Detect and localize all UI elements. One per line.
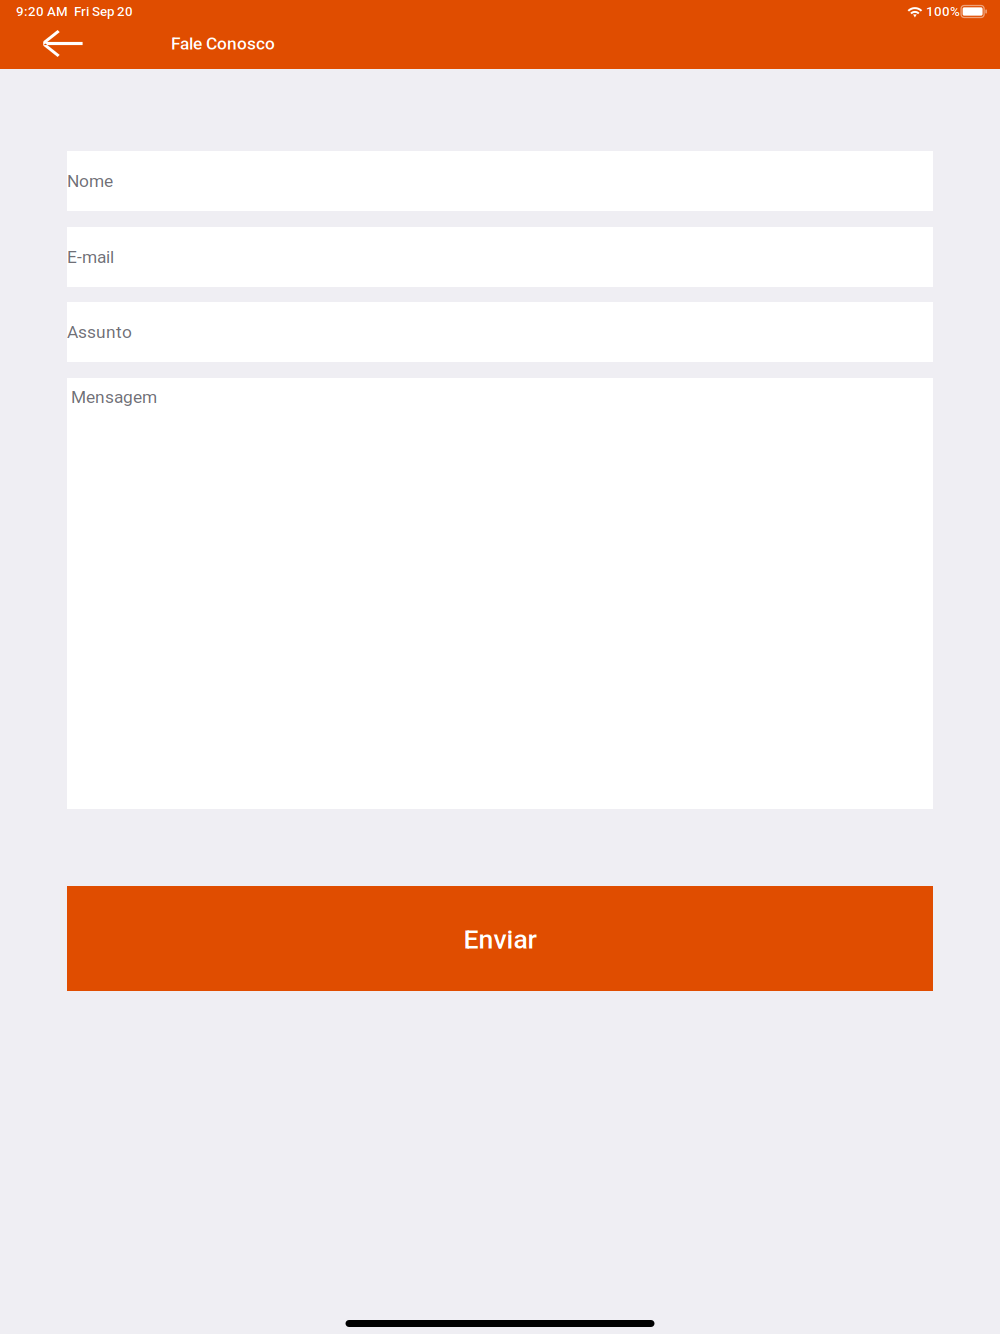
staticText: Enviar (463, 924, 536, 955)
button[interactable]: E-mail (67, 227, 933, 287)
button[interactable]: Back (21, 22, 121, 69)
staticText: Nome (67, 171, 113, 191)
staticText: 9:20 AM (16, 4, 68, 19)
button[interactable]: Mensagem (67, 378, 933, 809)
staticText: E-mail (67, 247, 114, 267)
button[interactable]: Nome (67, 151, 933, 211)
staticText: Mensagem (71, 387, 157, 407)
button[interactable]: Enviar (67, 886, 933, 991)
button[interactable]: Assunto (67, 302, 933, 362)
staticText: Assunto (67, 322, 132, 342)
staticText: Fale Conosco (171, 33, 275, 54)
staticText: Fri Sep 20 (74, 4, 133, 19)
staticText: 100% (926, 4, 960, 19)
